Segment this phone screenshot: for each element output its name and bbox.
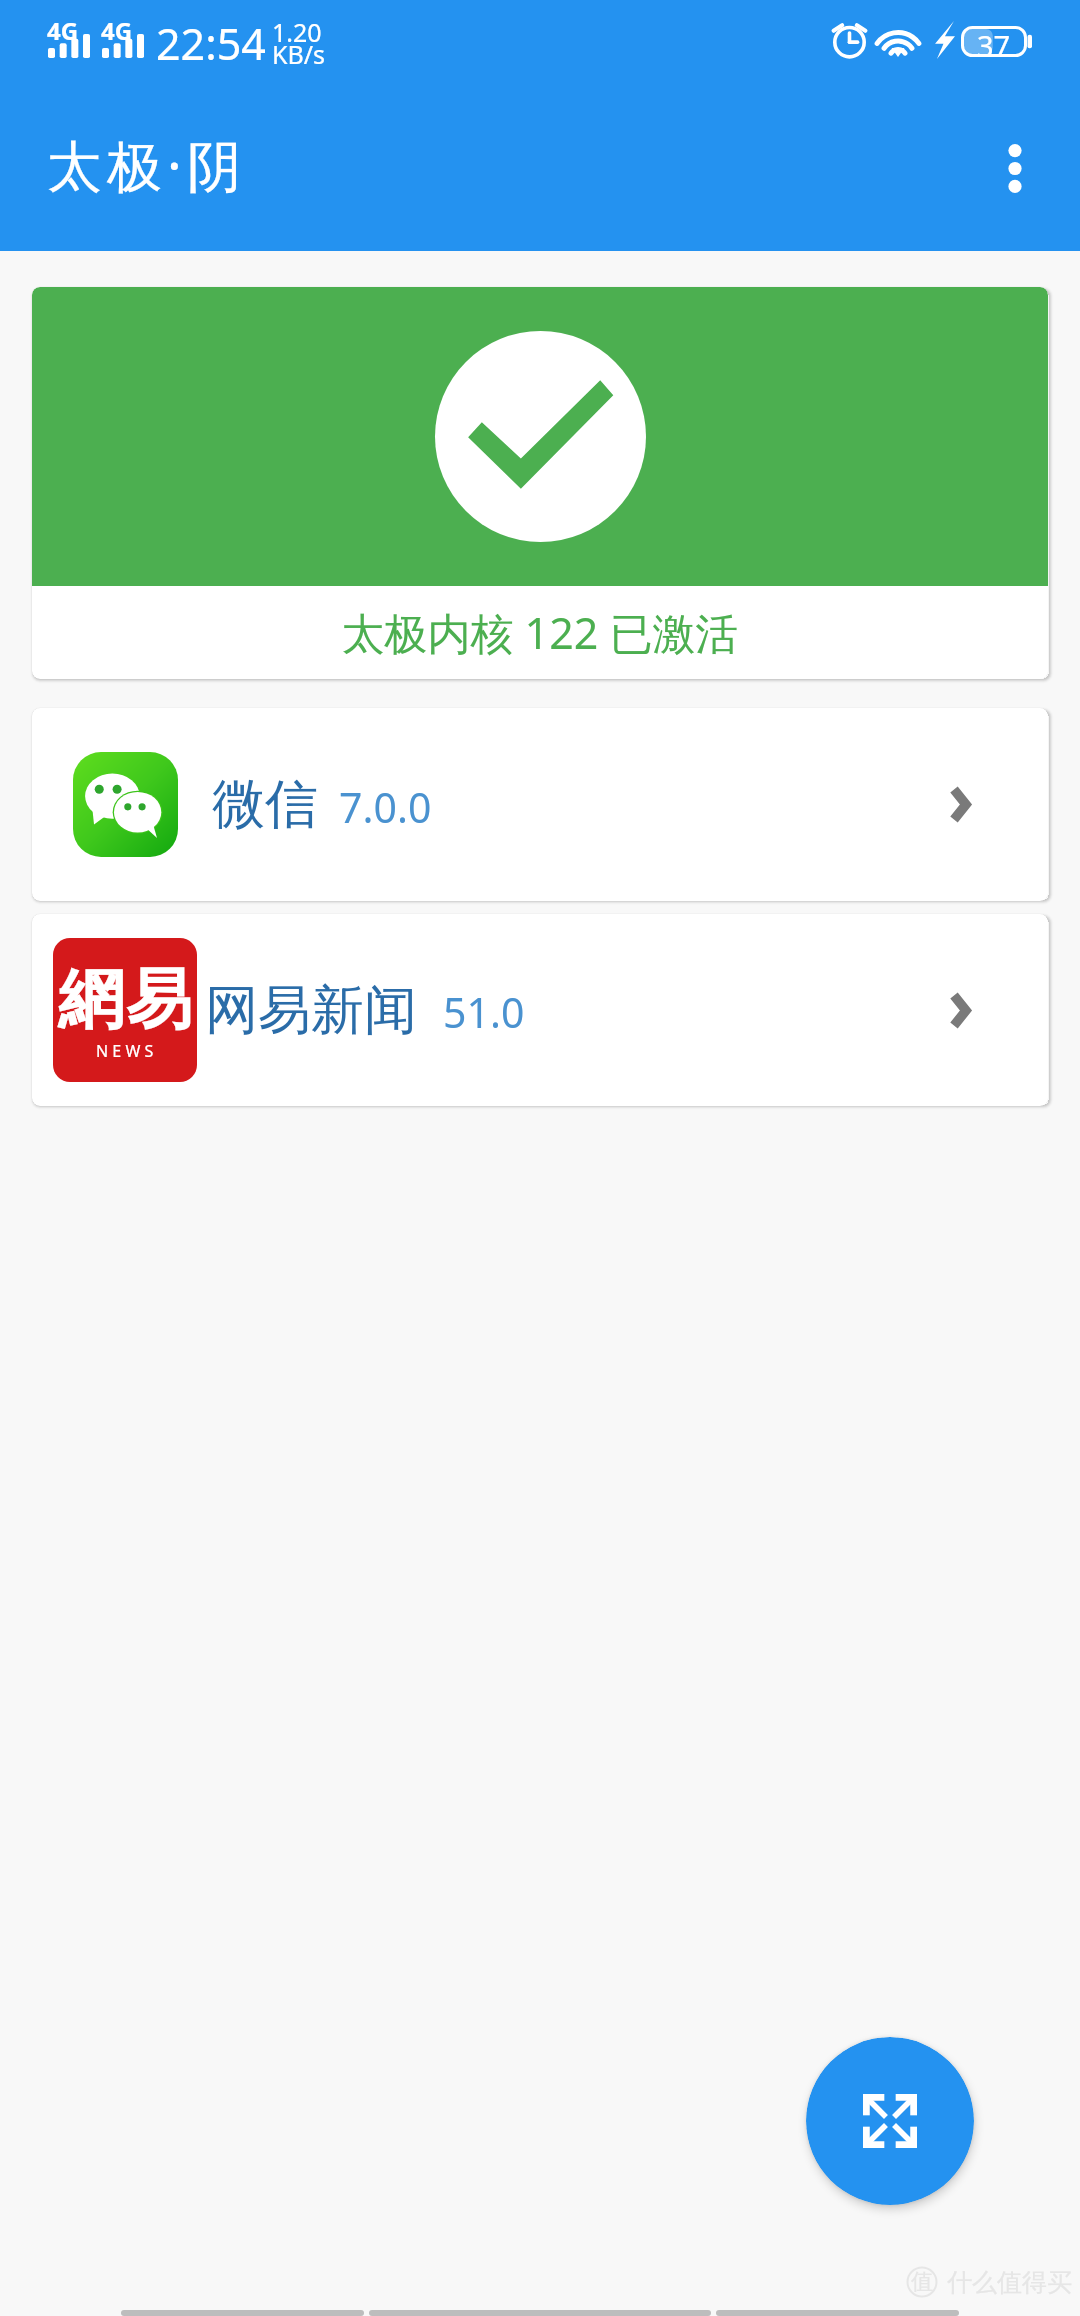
staticText: N E W S [96,1040,154,1062]
staticText: 什么值得买 [947,2267,1072,2298]
staticText: 4G [101,14,133,47]
staticText: 51.0 [443,984,525,1040]
staticText: 37 [977,26,1011,57]
button[interactable]: More options [966,113,1063,223]
staticText: 太极·阴 [47,127,247,202]
staticText: 22:54 [156,14,266,73]
staticText: 值 [911,2268,933,2296]
staticText: 微信 [212,771,318,838]
button[interactable]: 微信 [32,708,1048,901]
staticText: 太极内核 122 已激活 [341,603,739,662]
staticText: 4G [47,14,79,47]
button[interactable]: 網易 [32,914,1048,1106]
staticText: 网易新闻 [205,977,417,1044]
staticText: 7.0.0 [339,779,432,835]
staticText: 網易 [57,958,193,1041]
staticText: KB/s [272,37,326,71]
button[interactable]: 太极内核 122 已激活 [32,287,1048,679]
staticText: 1.20 [272,15,322,49]
button[interactable]: Expand [806,2037,974,2205]
